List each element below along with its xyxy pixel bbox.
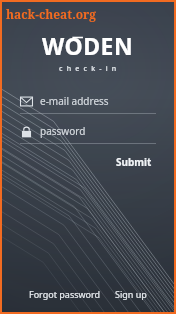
staticText: Submit (116, 155, 152, 169)
button[interactable]: Password (20, 122, 156, 140)
staticText: WODEN (42, 30, 134, 61)
staticText: hack-cheat.org (6, 6, 97, 22)
button[interactable]: Sign up (111, 285, 151, 303)
button[interactable]: E-mail (20, 92, 156, 110)
other: E-mail (20, 95, 33, 108)
other: Password (20, 125, 33, 138)
staticText: Sign up (115, 288, 147, 300)
staticText: Forgot password (29, 288, 101, 300)
staticText: password (40, 124, 86, 138)
staticText: c h e c k - i n (59, 64, 118, 74)
staticText: e-mail address (40, 94, 109, 108)
button[interactable]: Forgot password (25, 285, 105, 303)
button[interactable]: Submit (112, 153, 156, 171)
